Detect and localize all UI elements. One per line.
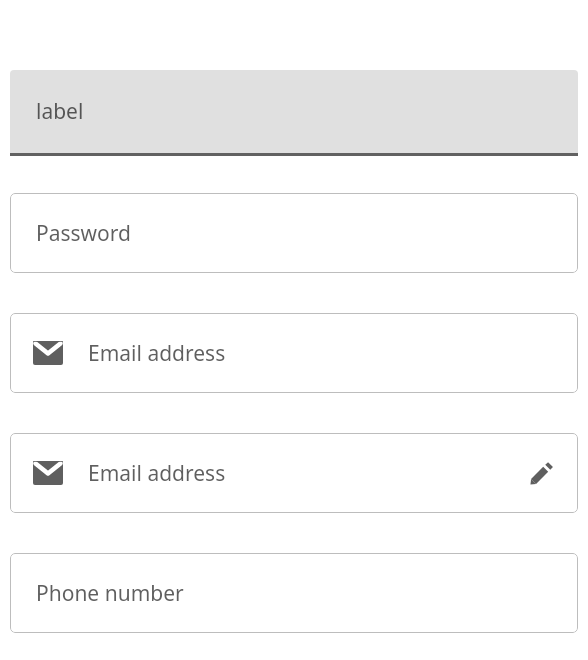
button[interactable]: label [10,70,578,156]
staticText: Email address [88,459,226,488]
staticText: Phone number [36,579,184,608]
button[interactable]: Email address [10,433,578,513]
button[interactable]: Edit [517,449,565,497]
staticText: label [36,97,84,126]
staticText: Password [36,219,131,248]
button[interactable]: Email address [10,313,578,393]
button[interactable]: Password [10,193,578,273]
button[interactable]: Phone number [10,553,578,633]
staticText: Email address [88,339,226,368]
